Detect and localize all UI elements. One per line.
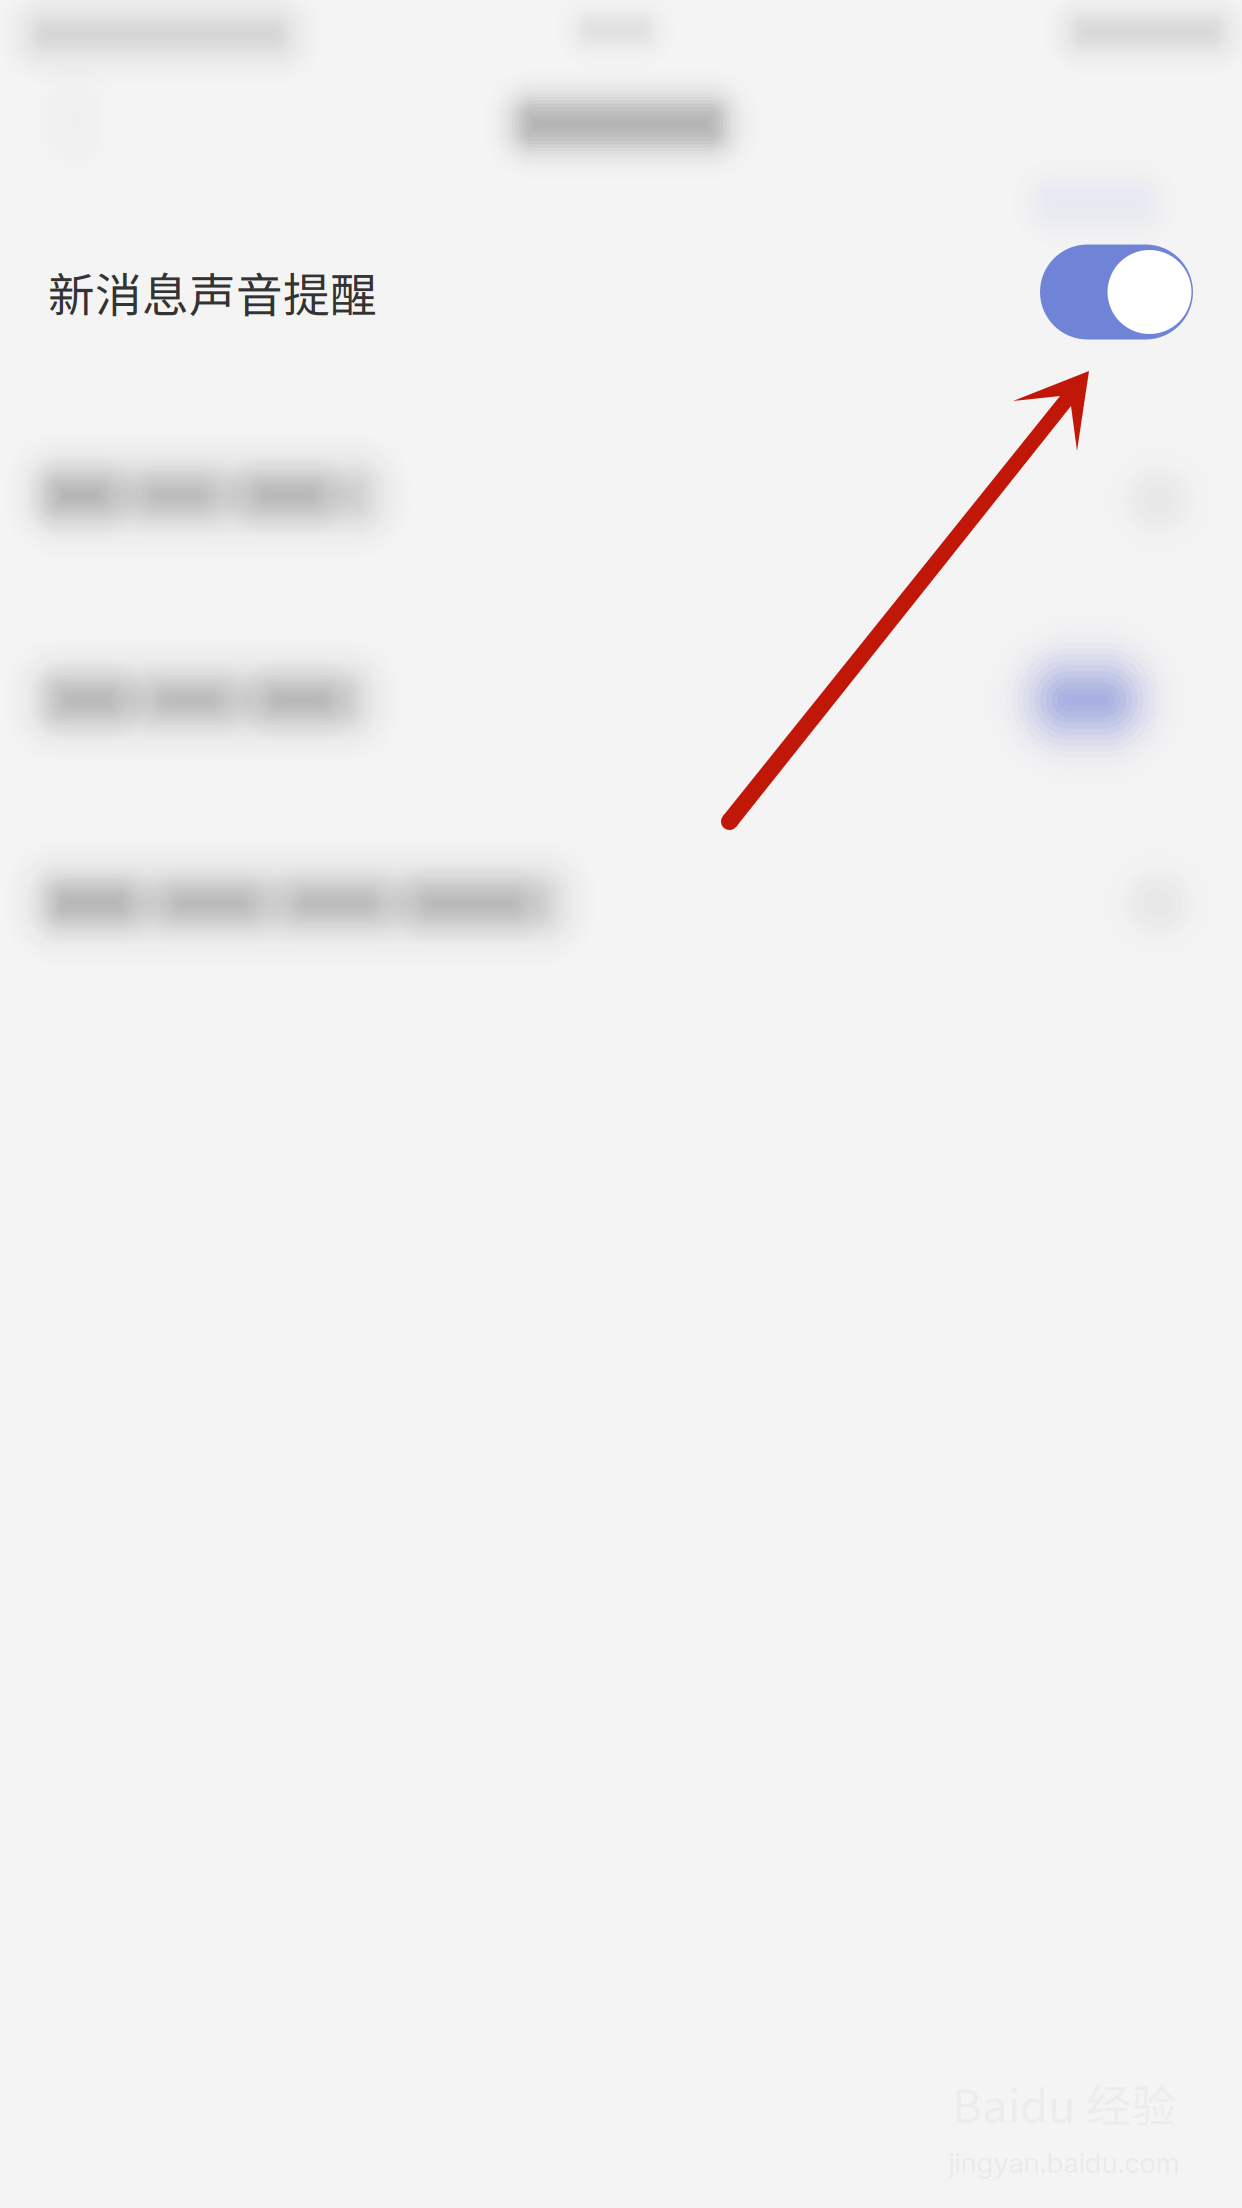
button[interactable]: 新消息声音提醒 (0, 214, 1242, 370)
staticText: jingyan.baidu.com (948, 2146, 1179, 2180)
staticText: 新消息声音提醒 (48, 258, 377, 326)
